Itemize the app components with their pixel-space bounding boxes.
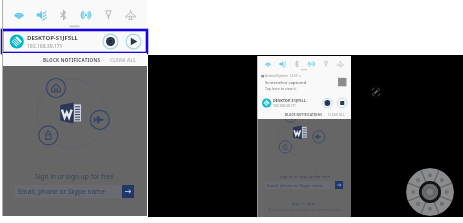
staticText: 192.168.39.171 — [273, 104, 296, 108]
staticText: Tap here to view it. — [265, 86, 297, 91]
staticText: Email, phone or Skype name — [267, 182, 324, 188]
staticText: Sign in or sign up for free — [279, 173, 330, 179]
button[interactable]: BLOCK NOTIFICATIONS — [285, 113, 322, 117]
staticText: Email, phone or Skype name — [18, 187, 105, 196]
button[interactable]: Android System 14:33 v — [257, 72, 351, 95]
staticText: CLEAR ALL — [110, 57, 137, 63]
staticText: Sign in later — [292, 200, 316, 206]
staticText: BLOCK NOTIFICATIONS — [285, 113, 322, 117]
staticText: By using this app, you agree to the term… — [268, 208, 341, 212]
staticText: DESKTOP-S1JF5LL — [27, 34, 78, 42]
button[interactable]: Email, phone or Skype name — [265, 181, 343, 189]
button[interactable]: DESKTOP-S1JF5LL — [2, 30, 147, 53]
button[interactable]: BLOCK NOTIFICATIONS — [43, 57, 101, 63]
button[interactable]: Remote control — [406, 168, 454, 216]
button[interactable]: Rotate screen — [369, 85, 383, 99]
staticText: Screenshot captured — [265, 79, 307, 85]
button[interactable]: Email, phone or Skype name — [15, 185, 134, 198]
staticText: BLOCK NOTIFICATIONS — [43, 57, 101, 63]
button[interactable]: CLEAR ALL — [328, 113, 345, 117]
button[interactable]: Sign in later — [292, 200, 316, 206]
staticText: 192.168.39.171 — [27, 43, 63, 50]
staticText: CLEAR ALL — [328, 113, 345, 117]
button[interactable]: DESKTOP-S1JF5LL — [257, 95, 351, 111]
staticText: DESKTOP-S1JF5LL — [273, 98, 306, 103]
staticText: Android System 14:33 v — [265, 74, 301, 78]
button[interactable]: CLEAR ALL — [110, 57, 137, 63]
staticText: Sign in or sign up for free — [35, 172, 114, 181]
